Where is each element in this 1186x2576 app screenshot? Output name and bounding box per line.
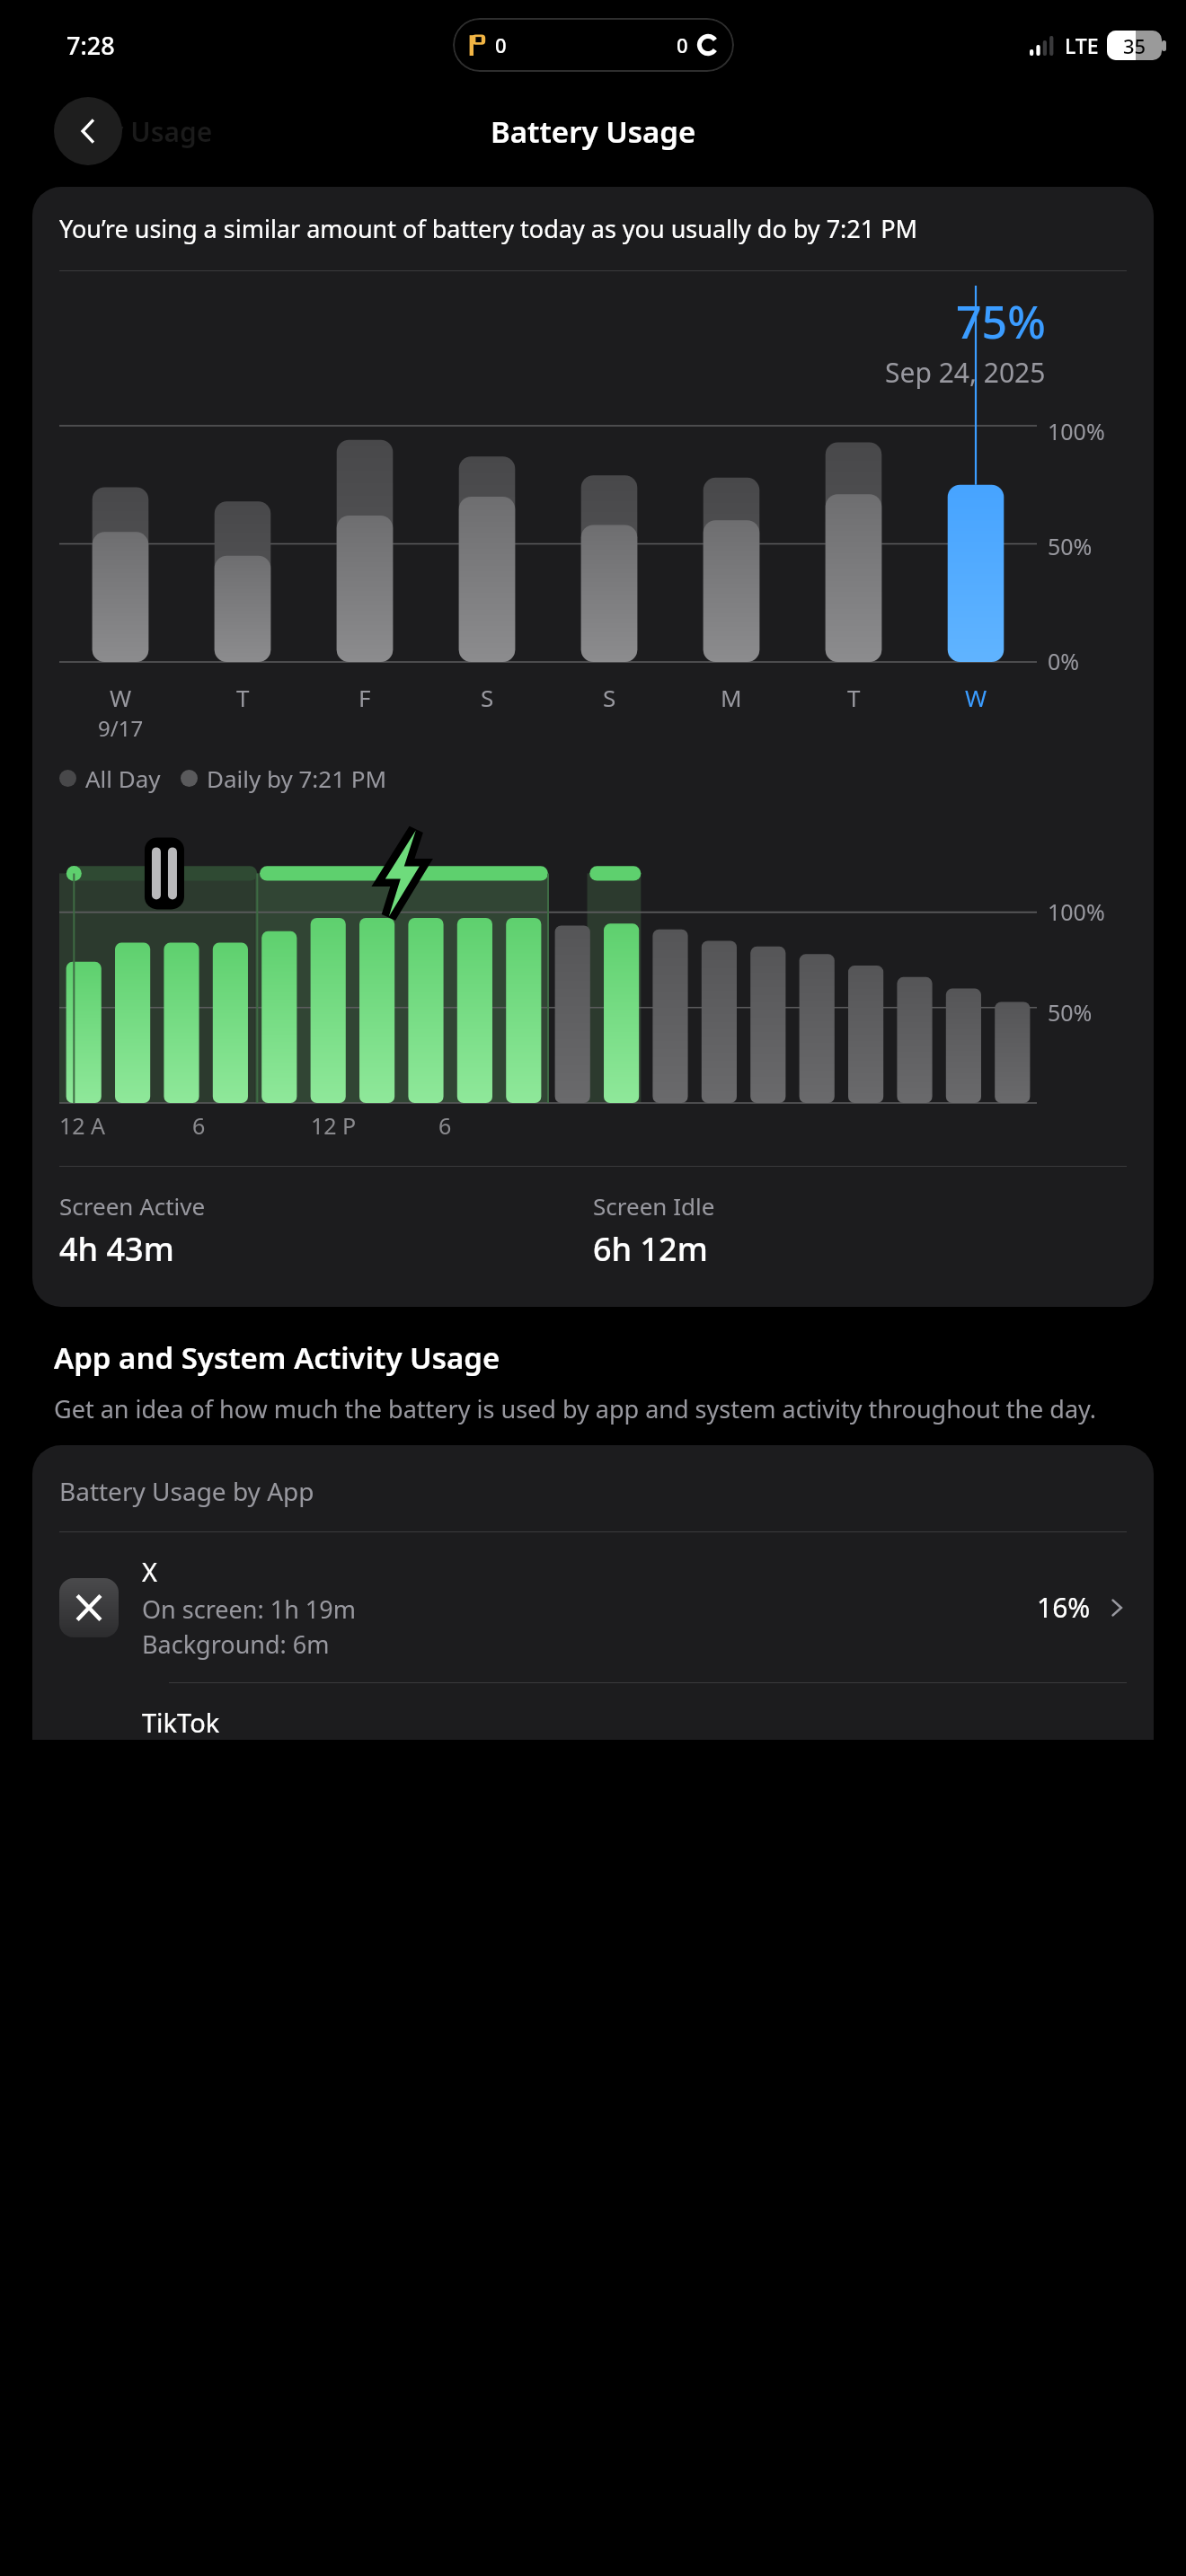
staticText: 75% bbox=[956, 291, 1046, 352]
staticText: Background: 6m bbox=[142, 1628, 330, 1661]
staticText: 4h 43m bbox=[59, 1227, 174, 1271]
staticText: F bbox=[358, 682, 371, 713]
staticText: Battery Usage bbox=[491, 111, 696, 152]
staticText: M bbox=[721, 682, 742, 713]
staticText: 6 bbox=[192, 1110, 206, 1141]
staticText: X bbox=[142, 1554, 157, 1589]
staticText: You’re using a similar amount of battery… bbox=[59, 212, 918, 245]
staticText: 6 bbox=[438, 1110, 452, 1141]
staticText: 50% bbox=[1048, 997, 1093, 1028]
staticText: Sep 24, 2025 bbox=[885, 354, 1046, 391]
staticText: 0 bbox=[677, 31, 688, 58]
staticText: 12 A bbox=[59, 1110, 106, 1141]
staticText: Screen Idle bbox=[593, 1190, 715, 1222]
staticText: Battery Usage by App bbox=[59, 1474, 314, 1508]
staticText: 0 bbox=[495, 31, 507, 58]
button[interactable]: TikTok bbox=[59, 1683, 1127, 1740]
button[interactable]: X bbox=[59, 1532, 1127, 1682]
staticText: 6h 12m bbox=[593, 1227, 708, 1271]
staticText: 50% bbox=[1048, 531, 1093, 561]
staticText: Screen Active bbox=[59, 1190, 206, 1222]
staticText: T bbox=[236, 682, 250, 713]
staticText: TikTok bbox=[142, 1705, 220, 1740]
button[interactable]: Back bbox=[54, 97, 122, 165]
staticText: S bbox=[603, 682, 616, 713]
staticText: S bbox=[481, 682, 494, 713]
staticText: 100% bbox=[1048, 416, 1105, 446]
staticText: 9/17 bbox=[98, 713, 144, 743]
staticText: ry Usage bbox=[97, 113, 213, 150]
staticText: 12 P bbox=[311, 1110, 357, 1141]
staticText: W bbox=[110, 682, 132, 713]
staticText: 7:28 bbox=[66, 29, 115, 62]
staticText: All Day bbox=[85, 763, 161, 794]
staticText: 35 bbox=[1123, 32, 1146, 59]
staticText: 100% bbox=[1048, 896, 1105, 927]
staticText: On screen: 1h 19m bbox=[142, 1592, 356, 1626]
staticText: T bbox=[847, 682, 861, 713]
staticText: 16% bbox=[1037, 1589, 1091, 1626]
staticText: Get an idea of how much the battery is u… bbox=[54, 1392, 1097, 1425]
staticText: W bbox=[965, 682, 987, 713]
staticText: Daily by 7:21 PM bbox=[207, 763, 387, 794]
staticText: LTE bbox=[1065, 31, 1099, 59]
staticText: 0% bbox=[1048, 646, 1080, 676]
staticText: App and System Activity Usage bbox=[54, 1337, 500, 1378]
